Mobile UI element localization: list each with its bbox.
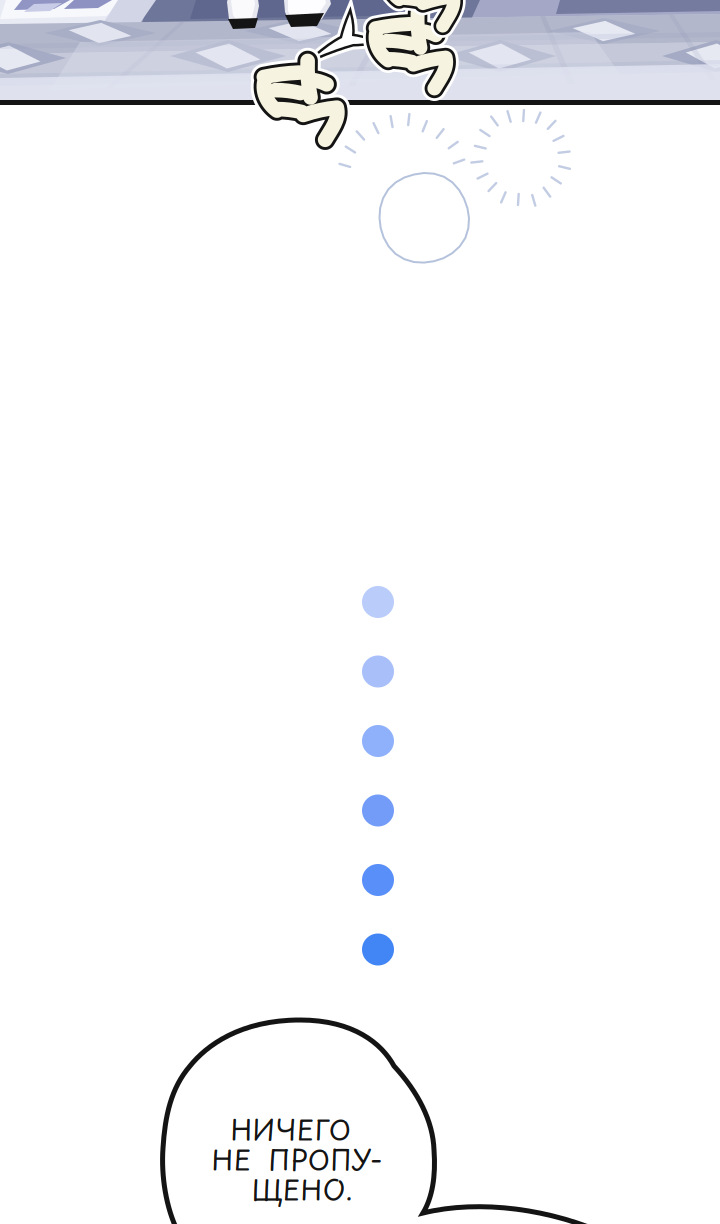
staticText: НЕ ПРОПУ-	[211, 1138, 382, 1180]
staticText: ЩЕНО.	[251, 1168, 352, 1210]
staticText: НИЧЕГО	[230, 1108, 351, 1150]
